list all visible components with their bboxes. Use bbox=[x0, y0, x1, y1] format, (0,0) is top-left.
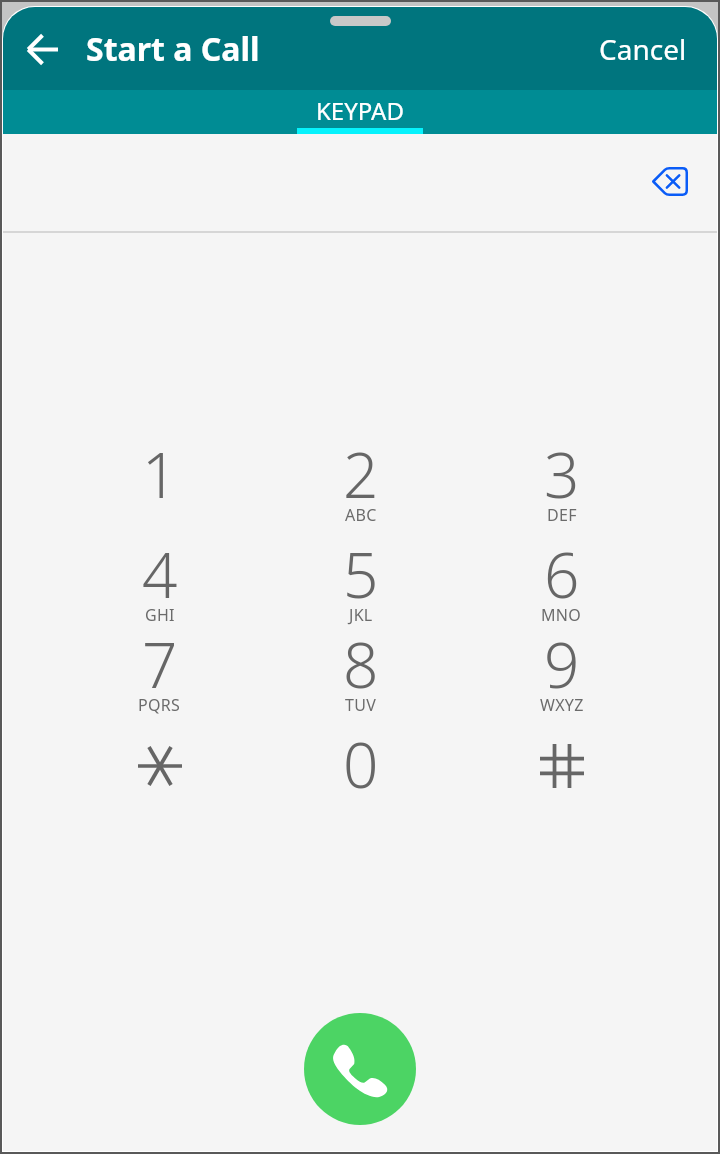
button[interactable]: 0 bbox=[260, 722, 461, 818]
staticText: JKL bbox=[349, 604, 373, 626]
staticText: PQRS bbox=[138, 694, 181, 716]
staticText: WXYZ bbox=[540, 694, 584, 716]
staticText: 2 bbox=[343, 432, 379, 516]
staticText: 9 bbox=[544, 622, 580, 706]
staticText: 8 bbox=[343, 622, 379, 706]
staticText: MNO bbox=[541, 604, 582, 626]
button[interactable]: Back bbox=[16, 23, 68, 75]
staticText: Cancel bbox=[599, 30, 687, 68]
button[interactable] bbox=[59, 722, 260, 818]
button[interactable]: Backspace bbox=[644, 155, 696, 207]
staticText: GHI bbox=[145, 604, 175, 626]
staticText: ABC bbox=[345, 504, 377, 526]
button[interactable]: 1 bbox=[59, 432, 260, 528]
staticText: 1 bbox=[142, 432, 178, 516]
staticText: TUV bbox=[345, 694, 377, 716]
button[interactable]: 7 bbox=[59, 622, 260, 718]
button[interactable]: 4 bbox=[59, 532, 260, 628]
button[interactable]: 2 bbox=[260, 432, 461, 528]
staticText: 0 bbox=[343, 722, 379, 806]
staticText: 5 bbox=[343, 532, 379, 616]
button[interactable]: 5 bbox=[260, 532, 461, 628]
button[interactable]: Cancel bbox=[587, 21, 699, 77]
staticText: 4 bbox=[142, 532, 178, 616]
button[interactable] bbox=[461, 722, 662, 818]
staticText: KEYPAD bbox=[316, 94, 404, 127]
button[interactable]: KEYPAD bbox=[297, 90, 423, 134]
staticText: 3 bbox=[544, 432, 580, 516]
button[interactable]: Call bbox=[304, 1013, 416, 1125]
button[interactable]: 3 bbox=[461, 432, 662, 528]
staticText: DEF bbox=[547, 504, 577, 526]
staticText: Start a Call bbox=[86, 27, 260, 71]
staticText: 6 bbox=[544, 532, 580, 616]
button[interactable]: 6 bbox=[461, 532, 662, 628]
button[interactable]: 8 bbox=[260, 622, 461, 718]
button[interactable]: 9 bbox=[461, 622, 662, 718]
staticText: 7 bbox=[142, 622, 178, 706]
